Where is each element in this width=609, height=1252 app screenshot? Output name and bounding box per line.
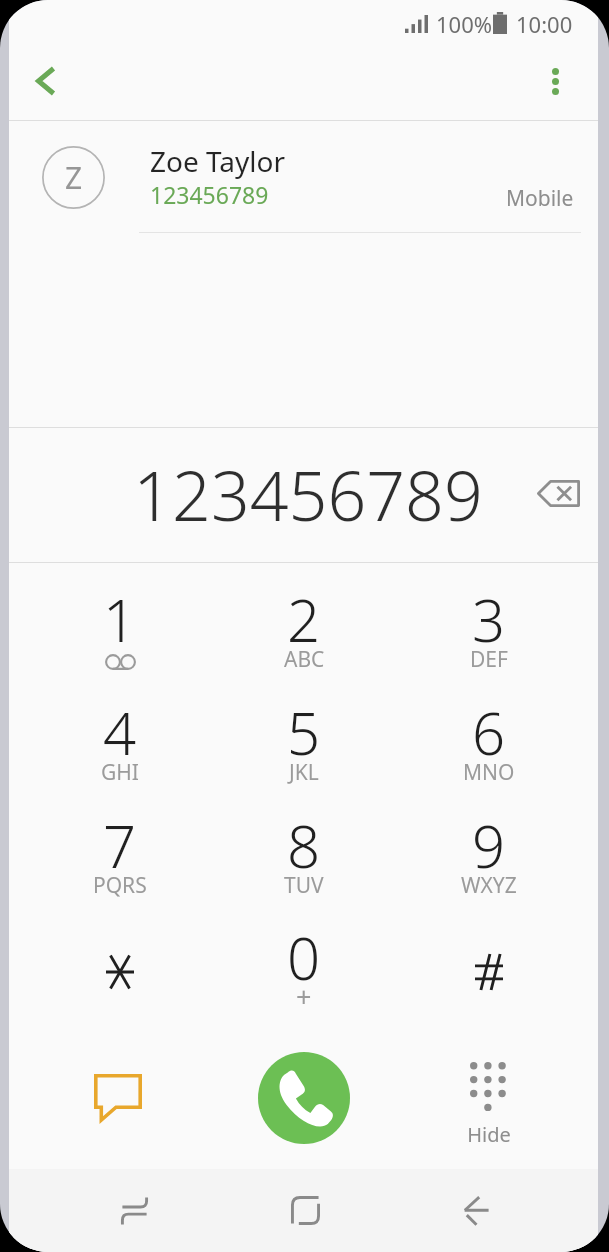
staticText: TUV (284, 871, 324, 900)
staticText: DEF (470, 645, 508, 674)
staticText: ABC (284, 645, 325, 674)
button[interactable]: 3 (414, 550, 564, 662)
staticText: 1 (103, 580, 137, 659)
button[interactable]: 4 (45, 663, 195, 775)
button[interactable]: Star (45, 917, 195, 1027)
staticText: + (296, 978, 312, 1015)
staticText: 123456789 (60, 448, 556, 541)
staticText: 10:00 (516, 9, 573, 39)
button[interactable]: Back (408, 1169, 544, 1252)
staticText: Hide (459, 1121, 519, 1148)
staticText: 100% (436, 9, 493, 39)
staticText: 8 (287, 806, 321, 885)
staticText: 3 (472, 580, 506, 659)
staticText: Z (65, 157, 83, 198)
button[interactable]: Call (258, 1052, 350, 1144)
button[interactable]: 2 (229, 550, 379, 662)
button[interactable]: Back (16, 51, 76, 111)
button[interactable]: 9 (414, 776, 564, 888)
staticText: PQRS (93, 871, 147, 900)
staticText: 2 (287, 580, 321, 659)
button[interactable]: 7 (45, 776, 195, 888)
button[interactable]: Z (9, 121, 598, 231)
button[interactable]: 1 (45, 550, 195, 662)
staticText: 6 (472, 693, 506, 772)
button[interactable]: More options (525, 51, 585, 111)
staticText: MNO (463, 758, 515, 787)
staticText: WXYZ (461, 871, 517, 900)
staticText: 0 (287, 918, 321, 997)
button[interactable]: Pound (414, 917, 564, 1027)
button[interactable]: Message (45, 1043, 195, 1153)
staticText: JKL (289, 758, 319, 787)
button[interactable]: 5 (229, 663, 379, 775)
button[interactable]: Recents (66, 1169, 202, 1252)
staticText: 4 (103, 693, 137, 772)
staticText: Mobile (506, 184, 574, 213)
staticText: 9 (472, 806, 506, 885)
button[interactable]: 6 (414, 663, 564, 775)
button[interactable]: 0 (229, 902, 379, 1014)
button[interactable]: Home (237, 1169, 373, 1252)
staticText: 7 (103, 806, 137, 885)
button[interactable]: Backspace (523, 458, 593, 528)
button[interactable]: Hide keypad (414, 1043, 564, 1153)
staticText: GHI (101, 758, 139, 787)
button[interactable]: 8 (229, 776, 379, 888)
staticText: 123456789 (150, 179, 269, 210)
staticText: 5 (287, 693, 321, 772)
staticText: Zoe Taylor (150, 142, 286, 180)
